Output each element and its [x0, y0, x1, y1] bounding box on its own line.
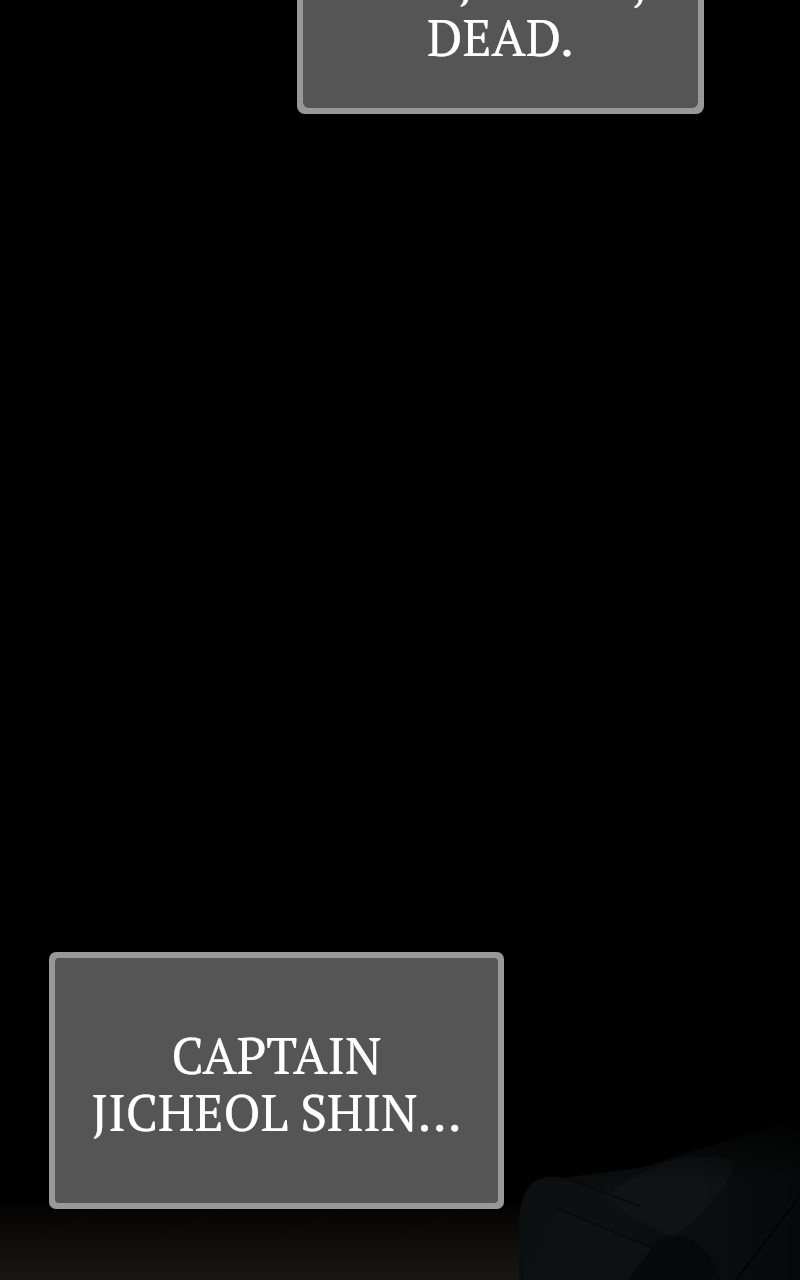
other: Comic panel artwork: [0, 0, 800, 1280]
button[interactable]: HIS JUNIOR,: [297, 0, 704, 114]
staticText: DEAD.: [427, 4, 574, 70]
button[interactable]: CAPTAIN JICHEOL SHIN...: [49, 952, 504, 1209]
staticText: HIS JUNIOR,: [365, 0, 646, 13]
button[interactable]: Comic panel artwork: [0, 0, 800, 1280]
staticText: CAPTAIN JICHEOL SHIN...: [91, 1022, 462, 1145]
